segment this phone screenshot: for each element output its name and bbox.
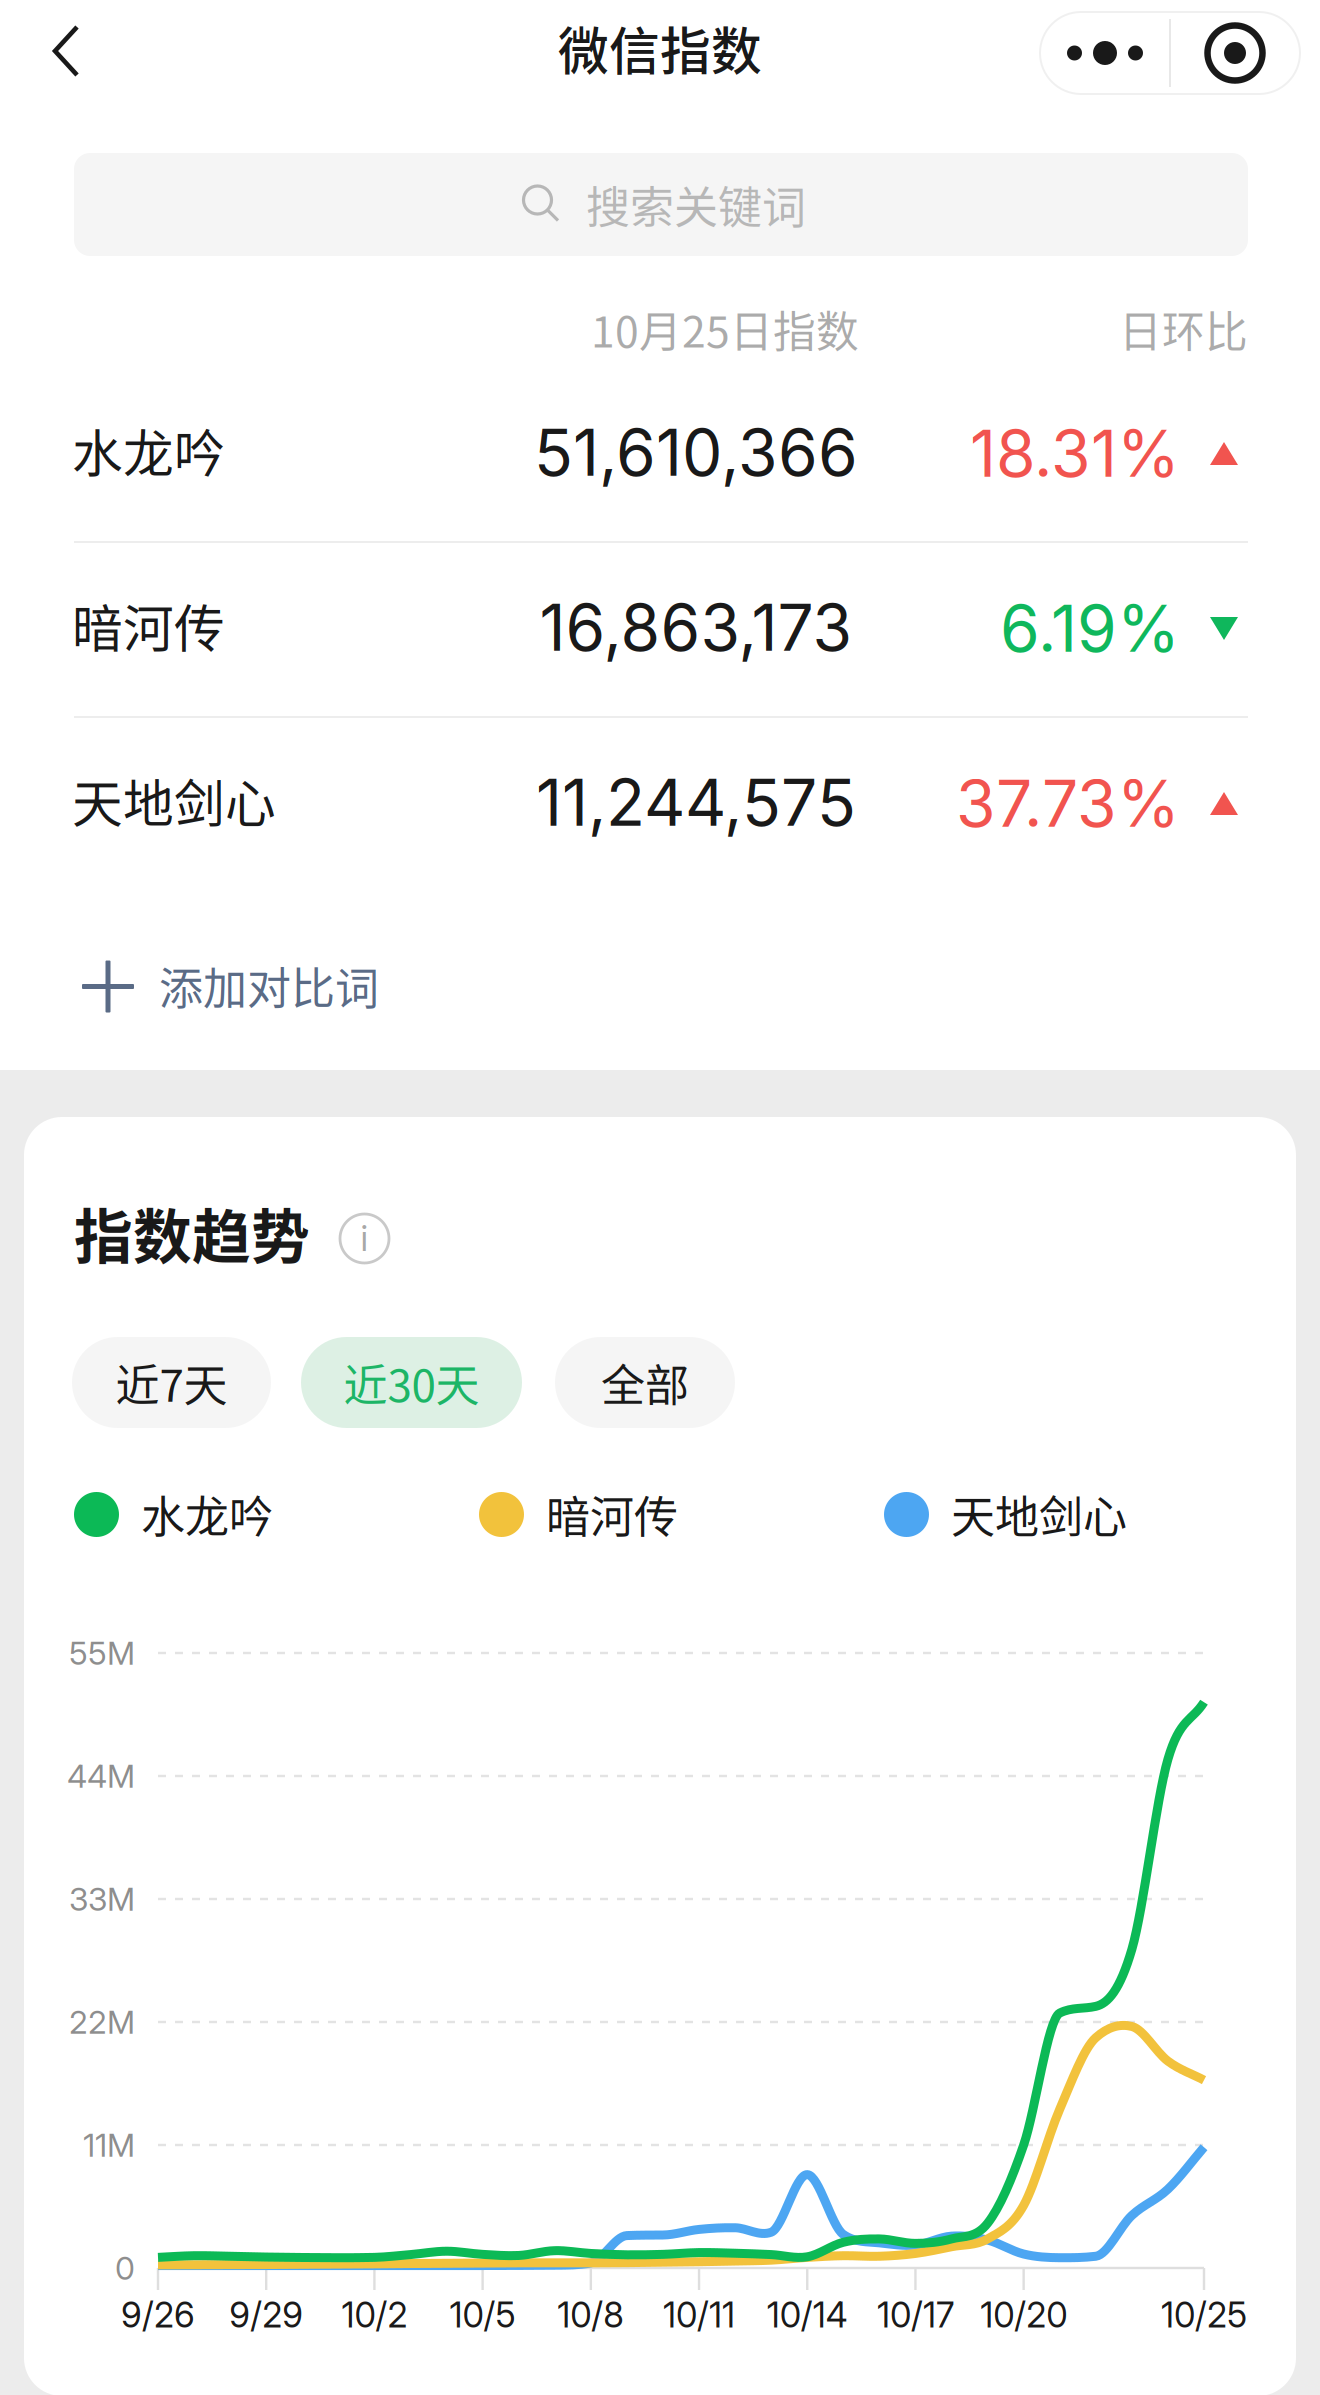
button[interactable]: 添加对比词	[0, 0, 1320, 179]
button[interactable]: 近7天	[0, 0, 199, 91]
staticText: 55M	[69, 1634, 135, 1672]
button[interactable]: 水龙吟	[0, 0, 1320, 175]
staticText: 44M	[67, 1757, 135, 1795]
staticText: 10/25	[1161, 2294, 1247, 2336]
staticText: 日环比	[1119, 298, 1248, 360]
staticText: 10/20	[980, 2294, 1067, 2336]
staticText: 水龙吟	[72, 414, 225, 487]
staticText: 全部	[601, 1351, 689, 1414]
staticText: 9/26	[121, 2294, 195, 2336]
staticText: 18.31%	[970, 415, 1180, 492]
staticText: 11M	[83, 2126, 135, 2164]
staticText: 6.19%	[1000, 590, 1180, 667]
staticText: 10/5	[450, 2294, 516, 2336]
staticText: 暗河传	[546, 1482, 678, 1546]
staticText: 10/2	[341, 2294, 407, 2336]
staticText: 10/14	[767, 2294, 848, 2336]
staticText: 天地剑心	[72, 764, 276, 837]
staticText: 搜索关键词	[586, 173, 806, 236]
button[interactable]: Back	[0, 0, 130, 104]
button[interactable]: 暗河传	[0, 0, 1320, 175]
staticText: i	[360, 1217, 368, 1259]
staticText: 暗河传	[72, 589, 225, 662]
staticText: 33M	[69, 1880, 135, 1918]
button[interactable]: 天地剑心	[0, 0, 1320, 175]
staticText: 22M	[69, 2003, 135, 2041]
staticText: 16,863,173	[539, 589, 852, 666]
staticText: 10/17	[877, 2294, 954, 2336]
staticText: 10/8	[557, 2294, 624, 2336]
staticText: 指数趋势	[74, 1190, 310, 1275]
staticText: 天地剑心	[951, 1482, 1127, 1546]
button[interactable]: 全部	[0, 0, 180, 91]
staticText: 微信指数	[558, 11, 762, 85]
staticText: 51,610,366	[534, 414, 858, 491]
staticText: 近7天	[115, 1351, 227, 1414]
staticText: 0	[115, 2249, 135, 2287]
staticText: 11,244,575	[536, 764, 856, 841]
staticText: 37.73%	[956, 765, 1180, 842]
staticText: 9/29	[229, 2294, 303, 2336]
staticText: 水龙吟	[141, 1482, 273, 1546]
button[interactable]: 近30天	[0, 0, 221, 91]
button[interactable]: 搜索关键词	[0, 0, 1174, 103]
button[interactable]: More options	[0, 0, 280, 104]
staticText: 近30天	[343, 1351, 479, 1414]
staticText: 10月25日指数	[591, 298, 859, 360]
staticText: 添加对比词	[159, 954, 379, 1017]
staticText: 10/11	[663, 2294, 735, 2336]
